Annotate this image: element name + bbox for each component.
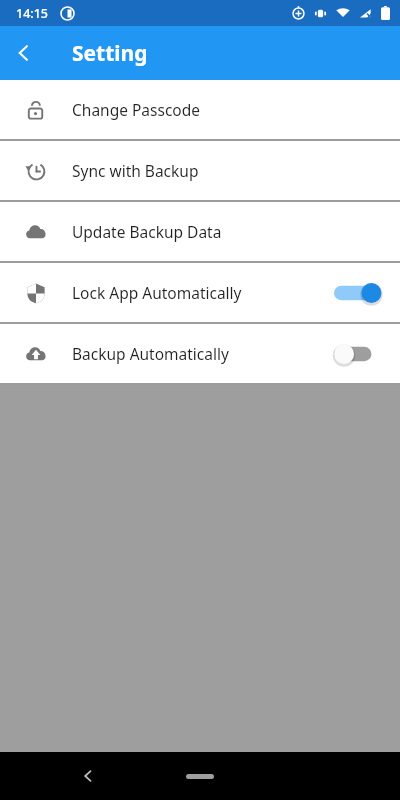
staticText: Backup Automatically [72, 343, 332, 364]
button[interactable]: Back [72, 760, 104, 792]
staticText: Sync with Backup [72, 160, 400, 181]
staticText: Change Passcode [72, 99, 400, 120]
staticText: Lock App Automatically [72, 282, 332, 303]
staticText: Update Backup Data [72, 221, 400, 242]
button[interactable]: Back [0, 29, 48, 77]
button[interactable]: Update Backup Data [0, 202, 400, 261]
staticText: Setting [72, 39, 148, 68]
button[interactable]: Home [186, 774, 214, 779]
button[interactable]: Sync with Backup [0, 141, 400, 200]
staticText: 14:15 [16, 5, 49, 22]
button[interactable]: Change Passcode [0, 80, 400, 139]
button[interactable]: Backup Automatically [0, 324, 400, 383]
button[interactable]: Backup Automatically [332, 337, 384, 371]
button[interactable]: Lock App Automatically [0, 263, 400, 322]
button[interactable]: Lock App Automatically [332, 276, 384, 310]
